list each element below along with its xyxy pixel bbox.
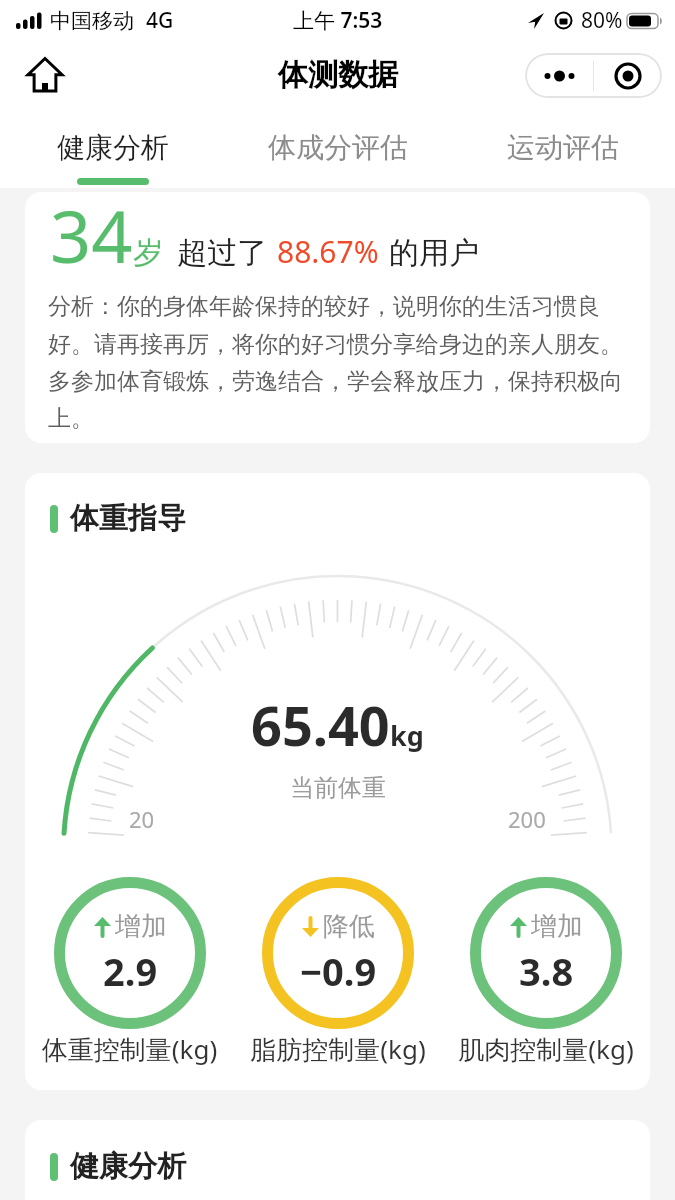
- staticText: 3.8: [519, 945, 574, 997]
- staticText: 4G: [146, 6, 174, 35]
- staticText: 80%: [581, 6, 623, 35]
- staticText: 2.9: [103, 945, 158, 997]
- staticText: 34: [50, 192, 133, 284]
- staticText: 的用户: [389, 234, 479, 272]
- staticText: 增加: [115, 910, 167, 943]
- staticText: 健康分析: [57, 130, 169, 165]
- staticText: 岁: [133, 234, 163, 272]
- staticText: kg: [390, 717, 424, 754]
- button[interactable]: [28, 57, 62, 93]
- staticText: 200: [508, 804, 546, 834]
- button[interactable]: 增加: [470, 877, 622, 1029]
- staticText: 增加: [531, 910, 583, 943]
- staticText: 降低: [323, 910, 375, 943]
- staticText: −0.9: [300, 945, 377, 997]
- staticText: 体测数据: [278, 56, 398, 94]
- staticText: 65.40: [251, 688, 390, 762]
- staticText: 体成分评估: [268, 130, 408, 165]
- staticText: 20: [129, 804, 155, 834]
- staticText: 肌肉控制量(kg): [442, 1031, 650, 1067]
- staticText: 超过了: [177, 234, 267, 272]
- button[interactable]: 降低: [262, 877, 414, 1029]
- button[interactable]: [525, 53, 593, 98]
- staticText: 分析：你的身体年龄保持的较好，说明你的生活习惯良 好。请再接再厉，将你的好习惯分…: [48, 292, 623, 432]
- staticText: 中国移动: [50, 8, 134, 34]
- staticText: 体重指导: [70, 500, 186, 537]
- staticText: 脂肪控制量(kg): [234, 1031, 442, 1067]
- staticText: 健康分析: [70, 1148, 186, 1185]
- button[interactable]: 增加: [54, 877, 206, 1029]
- staticText: 运动评估: [507, 130, 619, 165]
- staticText: 当前体重: [290, 773, 386, 803]
- button[interactable]: [594, 53, 662, 98]
- staticText: 体重控制量(kg): [25, 1031, 234, 1067]
- staticText: 上午 7:53: [293, 6, 383, 35]
- button[interactable]: 运动评估: [450, 110, 675, 188]
- button[interactable]: 健康分析: [0, 110, 225, 188]
- staticText: 88.67%: [277, 231, 379, 272]
- button[interactable]: 体成分评估: [225, 110, 450, 188]
